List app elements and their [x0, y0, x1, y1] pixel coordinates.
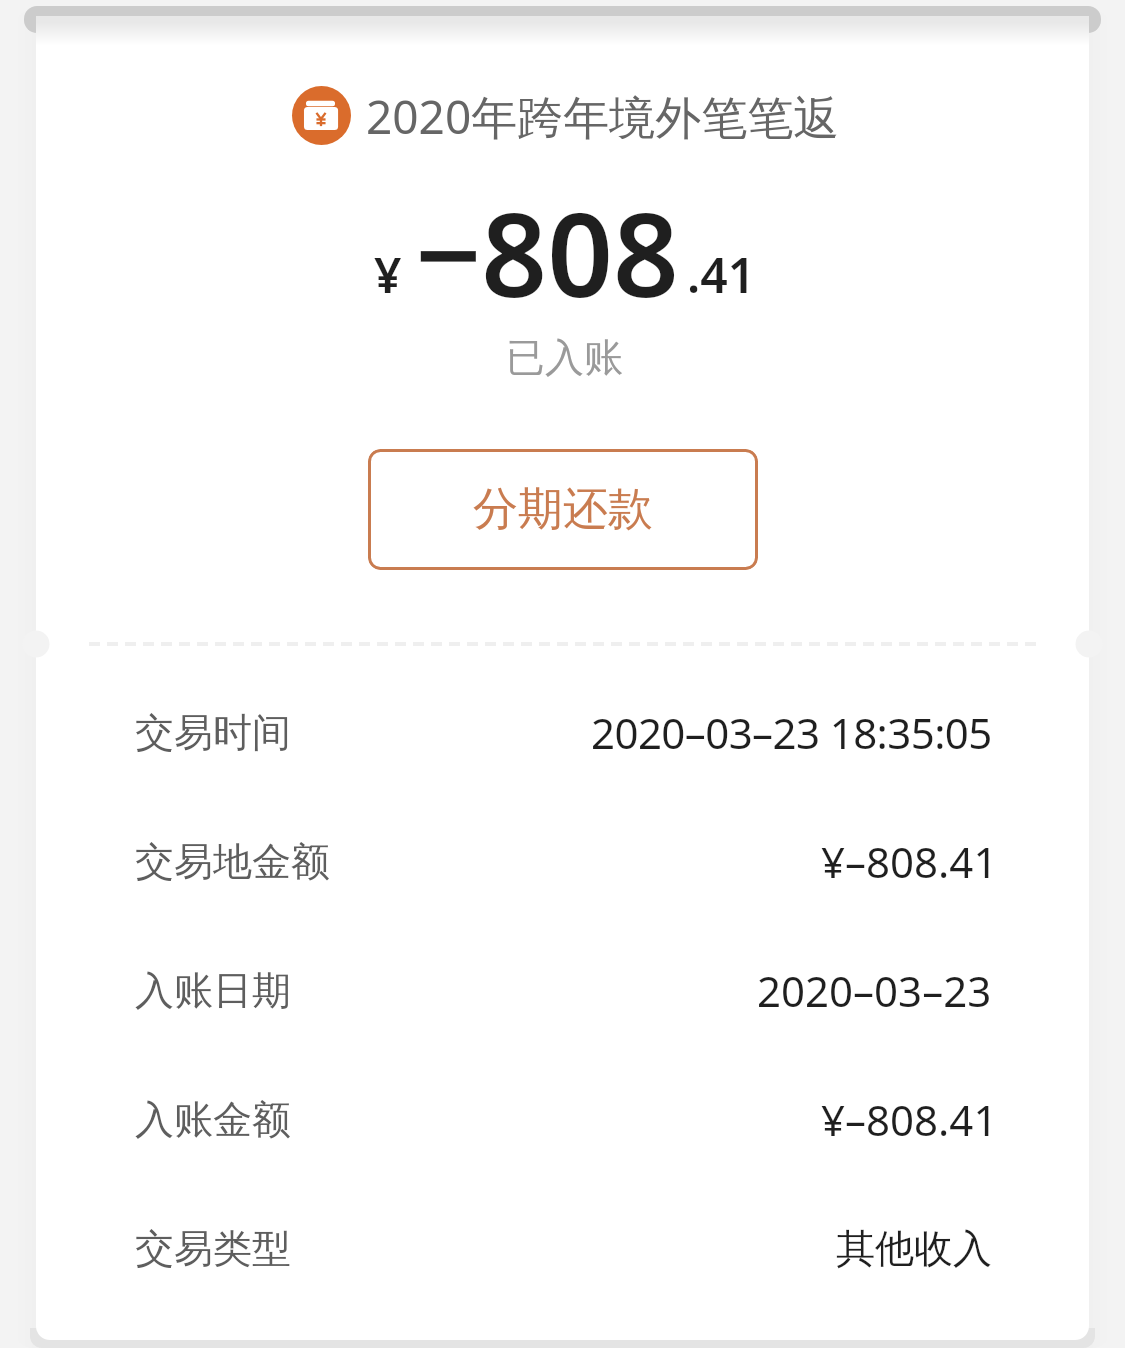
staticText: 入账日期: [135, 966, 291, 1015]
staticText: −808: [415, 174, 679, 331]
staticText: 交易地金额: [135, 837, 330, 886]
button[interactable]: 交易地金额: [36, 797, 1089, 926]
staticText: .41: [687, 242, 756, 307]
staticText: 分期还款: [473, 481, 653, 538]
staticText: 2020年跨年境外笔笔返: [366, 85, 840, 148]
button[interactable]: 入账金额: [36, 1055, 1089, 1184]
staticText: 交易类型: [135, 1224, 291, 1273]
staticText: 2020–03–23 18:35:05: [591, 704, 992, 761]
button[interactable]: 交易类型: [36, 1184, 1089, 1313]
button[interactable]: 入账日期: [36, 926, 1089, 1055]
staticText: 入账金额: [135, 1095, 291, 1144]
button[interactable]: 交易时间: [36, 668, 1089, 797]
staticText: ¥–808.41: [821, 1091, 998, 1148]
staticText: 2020–03–23: [757, 962, 992, 1019]
staticText: ¥–808.41: [821, 833, 998, 890]
other: Wallet: [292, 86, 351, 145]
staticText: 已入账: [506, 333, 623, 382]
button[interactable]: 分期还款: [368, 449, 758, 570]
staticText: ¥: [374, 242, 402, 307]
staticText: 交易时间: [135, 708, 291, 757]
staticText: 其他收入: [836, 1224, 992, 1273]
